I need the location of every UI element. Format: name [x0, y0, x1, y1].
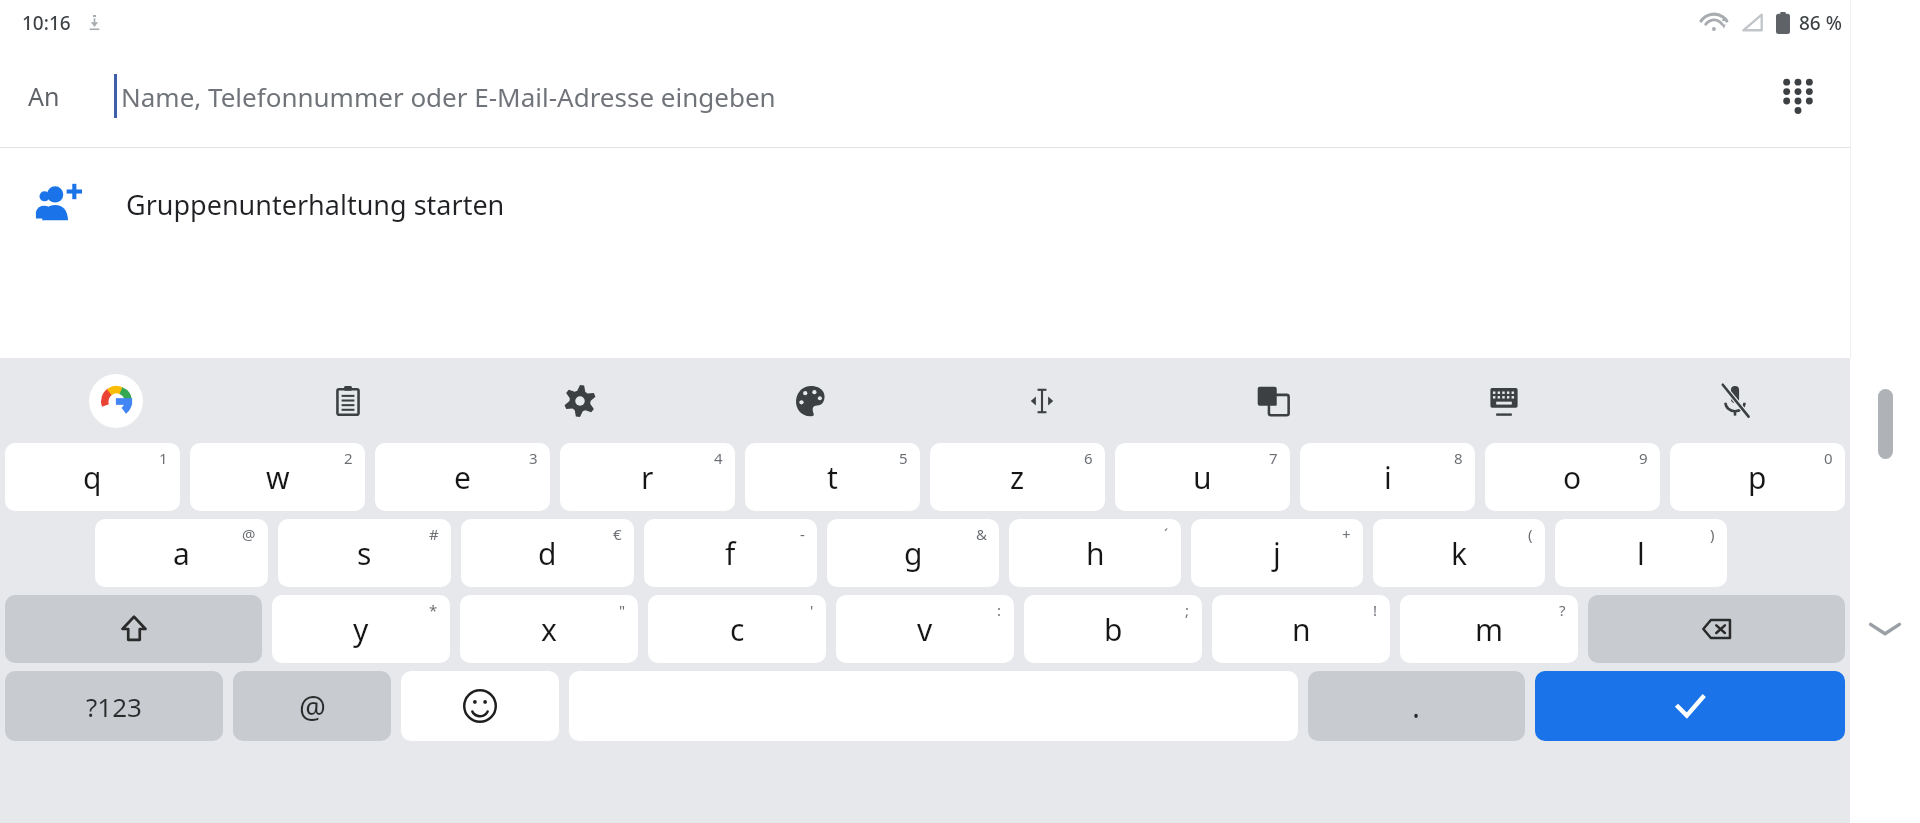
button[interactable]: Spracheingabe aus — [1619, 358, 1850, 443]
staticText: ' — [810, 600, 814, 620]
button[interactable]: Google — [0, 358, 232, 443]
button[interactable]: Tastaturmodus — [1388, 358, 1619, 443]
staticText: s — [357, 533, 372, 574]
staticText: # — [429, 524, 439, 544]
button[interactable]: Tastatur ausblenden — [1850, 590, 1920, 666]
staticText: n — [1292, 609, 1311, 650]
staticText: c — [730, 609, 745, 650]
staticText: m — [1475, 609, 1504, 650]
button[interactable]: @ — [233, 671, 391, 741]
staticText: h — [1086, 533, 1105, 574]
button[interactable]: l — [1555, 519, 1727, 587]
staticText: z — [1010, 457, 1025, 498]
button[interactable]: j — [1191, 519, 1363, 587]
staticText: € — [613, 524, 622, 544]
staticText: 5 — [899, 448, 908, 468]
button[interactable]: s — [278, 519, 451, 587]
staticText: 0 — [1824, 448, 1833, 468]
button[interactable]: Gruppenunterhaltung starten — [0, 148, 1850, 260]
staticText: 86 % — [1799, 10, 1842, 36]
staticText: + — [1342, 524, 1351, 544]
button[interactable]: x — [460, 595, 638, 663]
button[interactable]: Übersetzen — [1157, 358, 1388, 443]
button[interactable]: u — [1115, 443, 1290, 511]
staticText: 10:16 — [22, 10, 71, 36]
button[interactable]: z — [930, 443, 1105, 511]
button[interactable]: g — [827, 519, 999, 587]
button[interactable]: d — [461, 519, 634, 587]
staticText: 4 — [714, 448, 723, 468]
staticText: b — [1104, 609, 1123, 650]
button[interactable]: q — [5, 443, 180, 511]
staticText: f — [725, 533, 736, 574]
staticText: Name, Telefonnummer oder E-Mail-Adresse … — [121, 79, 776, 114]
button[interactable]: Wähltastatur — [1752, 50, 1844, 142]
button[interactable]: Design — [695, 358, 926, 443]
button[interactable]: v — [836, 595, 1014, 663]
button[interactable]: r — [560, 443, 735, 511]
staticText: o — [1563, 457, 1582, 498]
button[interactable]: Textcursor bewegen — [926, 358, 1157, 443]
staticText: @ — [299, 686, 326, 727]
staticText: v — [917, 609, 933, 650]
button[interactable]: Umschalttaste — [5, 595, 262, 663]
button[interactable]: i — [1300, 443, 1475, 511]
staticText: e — [454, 457, 471, 498]
button[interactable]: Einstellungen — [464, 358, 695, 443]
staticText: g — [904, 533, 923, 574]
staticText: . — [1412, 686, 1421, 727]
staticText: x — [541, 609, 557, 650]
staticText: 6 — [1084, 448, 1093, 468]
staticText: r — [641, 457, 654, 498]
staticText: & — [976, 524, 987, 544]
staticText: l — [1637, 533, 1645, 574]
staticText: y — [353, 609, 369, 650]
staticText: t — [827, 457, 838, 498]
button[interactable]: Fertig — [1535, 671, 1845, 741]
button[interactable]: c — [648, 595, 826, 663]
button[interactable]: p — [1670, 443, 1845, 511]
button[interactable]: t — [745, 443, 920, 511]
staticText: ? — [1559, 600, 1566, 620]
staticText: ; — [1185, 600, 1190, 620]
staticText: i — [1384, 457, 1392, 498]
button[interactable]: w — [190, 443, 365, 511]
staticText: ( — [1528, 524, 1533, 544]
staticText: " — [619, 600, 626, 620]
staticText: An — [28, 79, 60, 113]
button[interactable]: An — [0, 45, 1850, 147]
staticText: 7 — [1269, 448, 1278, 468]
button[interactable]: h — [1009, 519, 1181, 587]
button[interactable]: Emoji — [401, 671, 559, 741]
staticText: u — [1193, 457, 1212, 498]
staticText: d — [538, 533, 557, 574]
staticText: ) — [1710, 524, 1715, 544]
button[interactable]: n — [1212, 595, 1390, 663]
staticText: w — [266, 457, 290, 498]
staticText: p — [1748, 457, 1767, 498]
button[interactable]: y — [272, 595, 450, 663]
staticText: 8 — [1454, 448, 1463, 468]
button[interactable]: Löschen — [1588, 595, 1845, 663]
button[interactable]: f — [644, 519, 817, 587]
button[interactable]: Zwischenablage — [232, 358, 464, 443]
button[interactable]: o — [1485, 443, 1660, 511]
staticText: * — [429, 600, 438, 620]
button[interactable]: e — [375, 443, 550, 511]
staticText: k — [1451, 533, 1468, 574]
staticText: q — [83, 457, 102, 498]
button[interactable]: ?123 — [5, 671, 223, 741]
staticText: : — [997, 600, 1002, 620]
button[interactable]: m — [1400, 595, 1578, 663]
staticText: 2 — [344, 448, 353, 468]
staticText: ! — [1373, 600, 1378, 620]
staticText: - — [800, 524, 805, 544]
staticText: 3 — [529, 448, 538, 468]
button[interactable]: k — [1373, 519, 1545, 587]
button[interactable]: . — [1308, 671, 1525, 741]
button[interactable]: b — [1024, 595, 1202, 663]
button[interactable]: a — [95, 519, 268, 587]
staticText: j — [1273, 533, 1281, 574]
staticText: ´ — [1164, 524, 1169, 544]
